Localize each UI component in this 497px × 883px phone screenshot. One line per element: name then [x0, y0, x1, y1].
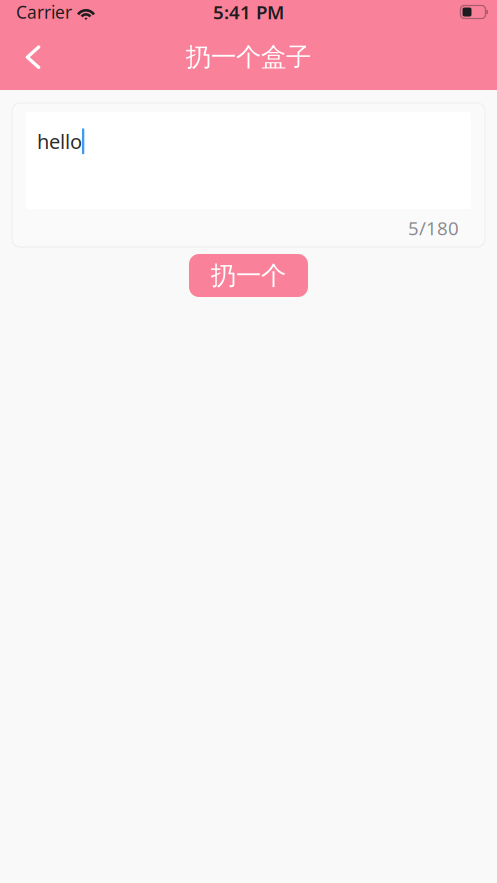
staticText: hello — [37, 128, 82, 155]
button[interactable]: hello — [26, 112, 471, 209]
staticText: 扔一个盒子 — [186, 41, 311, 72]
button[interactable]: 扔一个 — [189, 254, 308, 297]
staticText: 5:41 PM — [213, 0, 284, 24]
staticText: 扔一个 — [211, 260, 286, 291]
button[interactable]: Back — [10, 34, 56, 80]
staticText: 5/180 — [408, 216, 459, 240]
staticText: Carrier — [16, 0, 72, 23]
